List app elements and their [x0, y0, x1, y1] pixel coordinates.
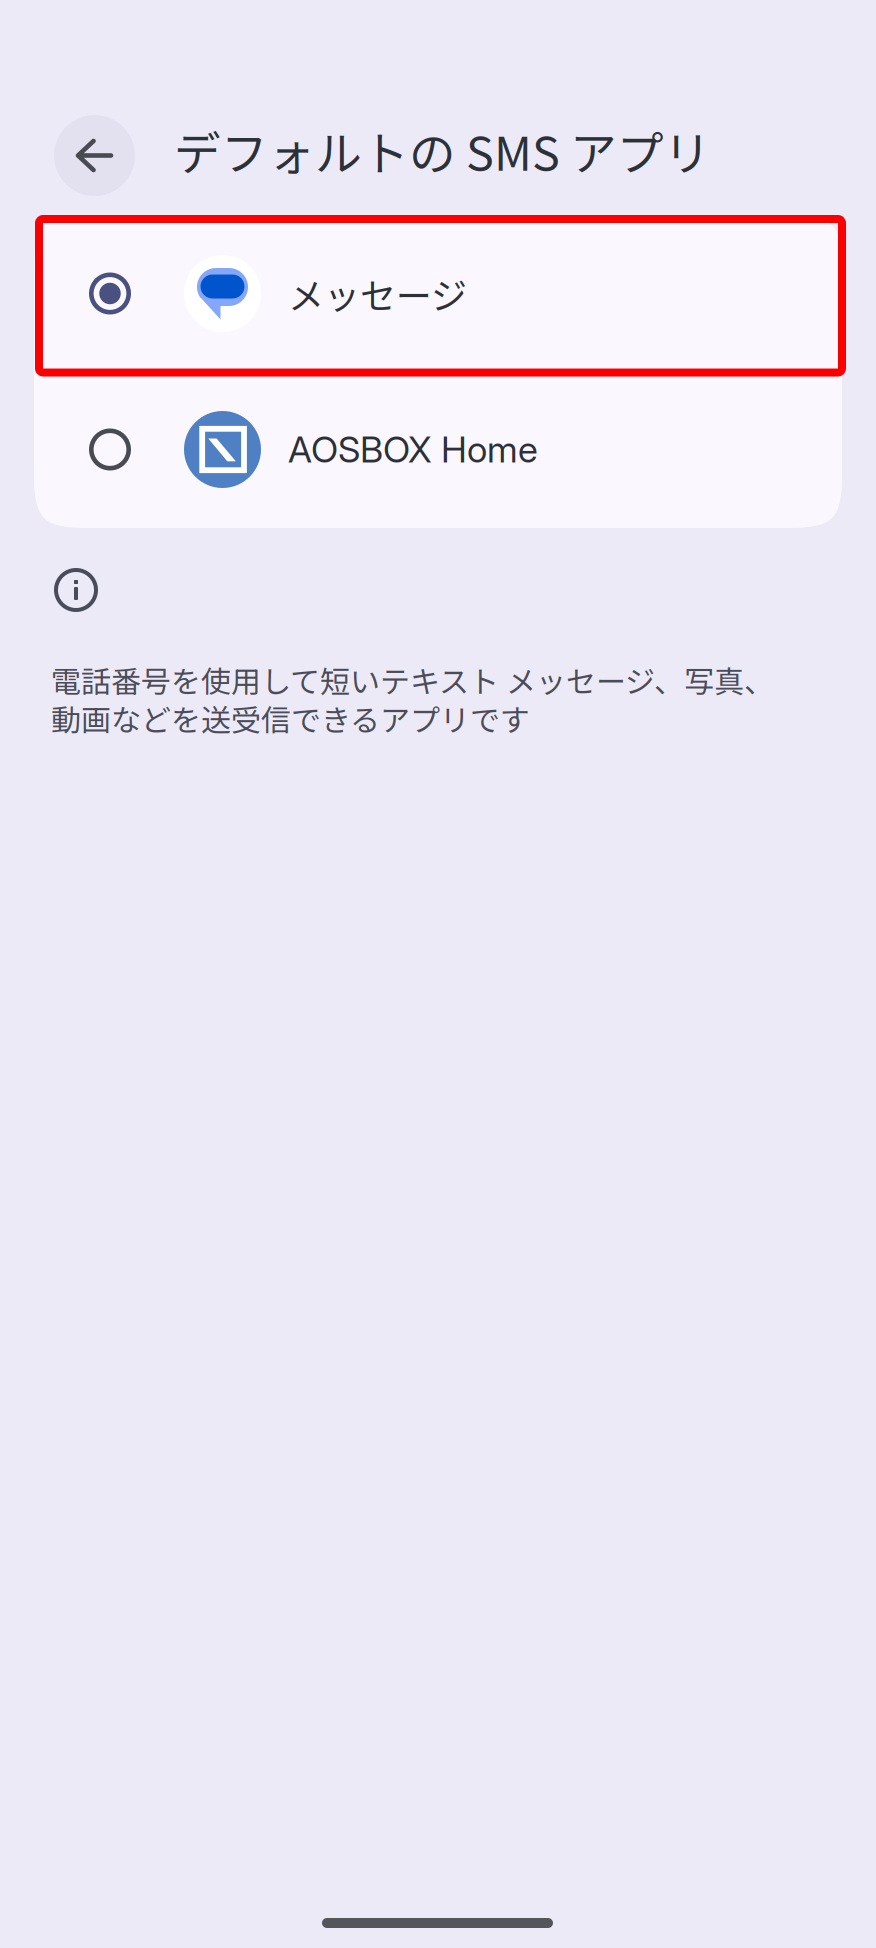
- button[interactable]: メッセージ: [34, 215, 842, 371]
- button[interactable]: Back: [54, 115, 135, 196]
- button[interactable]: AOSBOX Home: [34, 371, 842, 527]
- staticText: メッセージ: [288, 267, 467, 319]
- staticText: 電話番号を使用して短いテキスト メッセージ、写真、 動画などを送受信できるアプリ…: [51, 658, 774, 740]
- staticText: デフォルトの SMS アプリ: [174, 117, 711, 184]
- staticText: AOSBOX Home: [288, 428, 538, 471]
